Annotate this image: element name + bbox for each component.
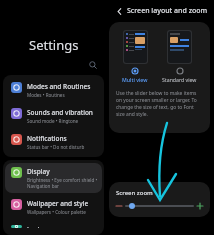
staticText: Modes and Routines: [27, 82, 91, 91]
staticText: Standard view: [162, 76, 197, 83]
button[interactable]: Sounds and vibration: [5, 104, 102, 128]
staticText: Modes • Routines: [27, 92, 65, 98]
staticText: Settings: [29, 36, 79, 54]
staticText: Sounds and vibration: [27, 108, 93, 117]
button[interactable]: Search: [87, 59, 99, 71]
button[interactable]: Modes and Routines: [5, 78, 102, 102]
button[interactable]: Back: [113, 5, 125, 17]
button[interactable]: Lock screen: [5, 221, 102, 232]
staticText: Wallpapers • Colour palette: [27, 209, 86, 215]
staticText: Display: [27, 167, 50, 176]
staticText: Status bar • Do not disturb: [27, 144, 85, 150]
staticText: Screen layout and zoom: [127, 6, 208, 16]
staticText: Sound mode • Ringtone: [27, 118, 79, 124]
button[interactable]: Wallpaper and style: [5, 195, 102, 219]
button[interactable]: Standard view: [160, 28, 199, 85]
staticText: Use the slider below to make items on yo…: [116, 90, 203, 118]
staticText: Notifications: [27, 134, 67, 143]
button[interactable]: Multi view: [120, 28, 150, 85]
staticText: Screen zoom: [116, 189, 153, 197]
button[interactable]: Notifications: [5, 130, 102, 154]
staticText: Brightness • Eye comfort shield • Naviga…: [27, 177, 98, 189]
button[interactable]: Display: [5, 163, 102, 193]
button[interactable]: Increase zoom: [197, 203, 203, 209]
button[interactable]: Decrease zoom: [116, 203, 122, 209]
staticText: Multi view: [122, 76, 148, 83]
staticText: Lock screen: [27, 225, 64, 228]
button[interactable]: [125, 202, 194, 210]
staticText: Wallpaper and style: [27, 199, 89, 208]
